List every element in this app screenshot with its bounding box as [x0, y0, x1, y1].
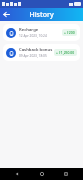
- staticText: History: [29, 10, 54, 20]
- button[interactable]: Back: [0, 8, 13, 21]
- button[interactable]: Cashback bonus: [3, 44, 80, 61]
- button[interactable]: Recents: [59, 168, 73, 180]
- staticText: 09 Apr 2023, 18:05: [19, 54, 47, 58]
- staticText: 12 Apr 2023, 10:24: [19, 34, 47, 38]
- staticText: + ₹200: [64, 30, 75, 35]
- button[interactable]: Back: [10, 168, 24, 180]
- button[interactable]: Home: [35, 168, 49, 180]
- button[interactable]: Recharge: [3, 24, 80, 41]
- staticText: Cashback bonus: [19, 47, 53, 53]
- staticText: Recharge: [19, 27, 39, 33]
- staticText: + ₹1,250.00: [56, 50, 75, 55]
